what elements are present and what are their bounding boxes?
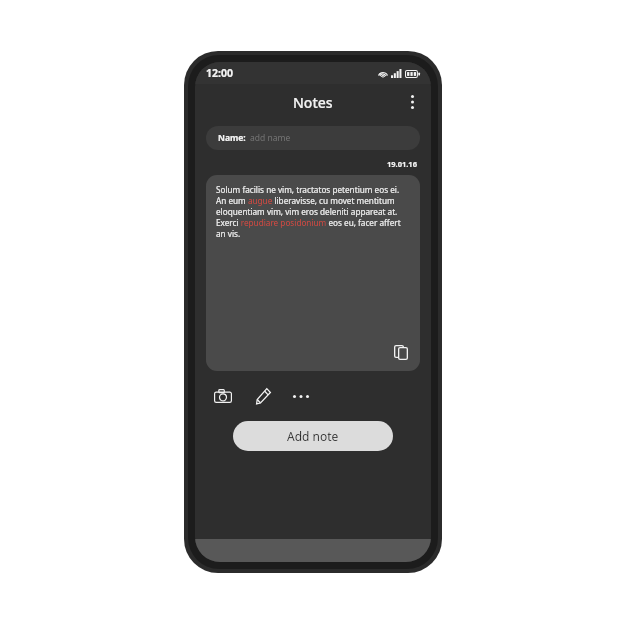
button[interactable]: Edit bbox=[251, 384, 275, 408]
button[interactable]: Add note bbox=[233, 421, 393, 451]
button[interactable]: More bbox=[289, 384, 313, 408]
button[interactable]: Camera bbox=[211, 384, 235, 408]
staticText: add name bbox=[250, 132, 291, 144]
button[interactable]: More options bbox=[399, 89, 425, 115]
staticText: 19.01.16 bbox=[387, 159, 417, 169]
staticText: Notes bbox=[293, 93, 333, 112]
button[interactable]: Name: bbox=[206, 126, 420, 150]
button[interactable]: Solum facilis ne vim, tractatos petentiu… bbox=[206, 175, 420, 371]
staticText: Name: bbox=[218, 132, 246, 144]
staticText: 12:00 bbox=[206, 66, 233, 80]
staticText: Solum facilis ne vim, tractatos petentiu… bbox=[216, 184, 410, 239]
staticText: Add note bbox=[287, 428, 339, 444]
button[interactable]: Copy bbox=[391, 342, 411, 362]
